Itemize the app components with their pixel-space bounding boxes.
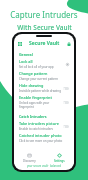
staticText: Enable to catch intruders [19,127,53,131]
button[interactable]: Toggle Take intruders picture [63,125,69,128]
staticText: Catch Intruders [19,114,47,119]
button[interactable]: Hide drawing [18,82,70,94]
staticText: Capture Intruders [10,9,78,20]
staticText: Secure Vault [29,40,60,47]
staticText: Click to see more on your photo [19,139,63,143]
staticText: Take intruders picture [19,121,59,126]
staticText: your secure vault · balanced [14,164,74,168]
staticText: General [19,52,33,57]
button[interactable]: Toggle Hide drawing [63,87,69,90]
button[interactable]: Enable fingerprint [18,94,70,110]
button[interactable]: Lock all [18,58,70,70]
button[interactable]: Take intruders picture [18,120,70,132]
staticText: With Secure Vault [17,23,72,32]
button[interactable]: Change pattern [18,70,70,82]
staticText: Invisible pattern while drawing [19,89,61,93]
button[interactable]: Toggle Enable fingerprint [63,101,69,104]
staticText: Enable fingerprint [19,95,52,100]
staticText: Change pattern [19,71,48,76]
button[interactable]: Lock [66,41,71,46]
button[interactable]: Discovery [14,151,44,164]
staticText: Hide drawing [19,83,44,88]
button[interactable]: Catched intruder photo [18,132,70,144]
staticText: Lock all [19,59,33,64]
staticText: Catched intruder photo [19,133,62,138]
button[interactable]: Settings [44,151,74,164]
staticText: Unlock apps with your fingerprint [19,101,63,109]
staticText: Change your current pattern [19,77,58,81]
button[interactable]: Info [65,62,69,66]
button[interactable]: Menu [17,41,22,46]
staticText: Set all lock all of your app [19,65,54,69]
staticText: Settings [54,159,65,163]
staticText: Discovery [23,159,36,163]
